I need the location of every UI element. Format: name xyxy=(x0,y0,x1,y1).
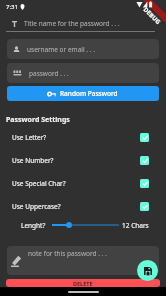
staticText: Lenght? xyxy=(21,221,46,230)
button[interactable]: Use Special Char? xyxy=(0,172,166,195)
button[interactable]: DELETE xyxy=(6,279,160,287)
button[interactable]: Use Letter? xyxy=(140,133,149,142)
staticText: Use Number? xyxy=(12,156,54,165)
button[interactable]: Use Number? xyxy=(0,149,166,172)
staticText: Title name for the password . . . xyxy=(24,19,120,28)
staticText: Use Uppercase? xyxy=(12,202,61,211)
button[interactable]: Use Uppercase? xyxy=(140,202,149,211)
staticText: note for this password . . . xyxy=(28,249,107,258)
button[interactable]: password . . . xyxy=(7,63,159,83)
button[interactable]: note for this password . . . xyxy=(7,246,159,275)
button[interactable]: Use Letter? xyxy=(0,126,166,149)
button[interactable]: Save password xyxy=(137,260,158,281)
staticText: password . . . xyxy=(29,69,69,78)
staticText: Password Settings xyxy=(6,115,70,125)
button[interactable]: Use Number? xyxy=(140,156,149,165)
button[interactable]: Use Uppercase? xyxy=(0,195,166,218)
staticText: Use Special Char? xyxy=(12,179,66,188)
button[interactable]: Use Special Char? xyxy=(140,179,149,188)
staticText: username or email . . . xyxy=(27,45,95,54)
staticText: 7:31 xyxy=(6,3,18,11)
staticText: DELETE xyxy=(73,280,93,287)
staticText: DEBUG xyxy=(142,6,162,26)
button[interactable]: username or email . . . xyxy=(7,39,159,59)
staticText: Use Letter? xyxy=(12,133,47,142)
staticText: Random Password xyxy=(60,89,118,98)
staticText: 12 Chars xyxy=(122,221,149,230)
button[interactable]: Title name for the password . . . xyxy=(6,16,155,31)
button[interactable]: Random Password xyxy=(7,86,159,101)
